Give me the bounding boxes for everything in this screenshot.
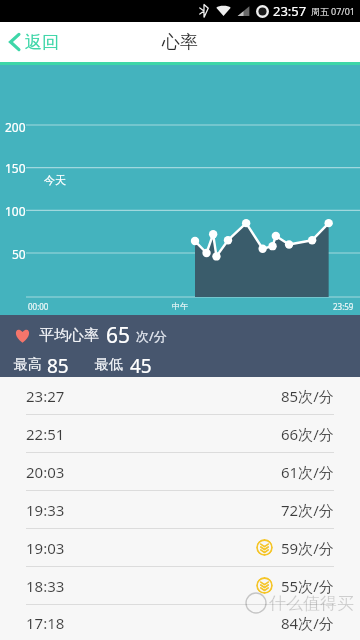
- staticText: 19:03: [26, 538, 65, 558]
- staticText: 23:59: [333, 301, 354, 312]
- staticText: 00:00: [28, 301, 49, 312]
- staticText: 心率: [162, 31, 198, 54]
- staticText: 85: [47, 353, 69, 377]
- button[interactable]: 22:51: [0, 415, 360, 452]
- staticText: 17:18: [26, 613, 65, 633]
- staticText: 最高: [14, 356, 42, 374]
- staticText: 23:27: [26, 386, 65, 406]
- button[interactable]: 18:33: [0, 567, 360, 604]
- staticText: 50: [12, 246, 26, 262]
- staticText: 23:57: [273, 2, 307, 20]
- staticText: 什么值得买: [269, 593, 354, 614]
- staticText: 今天: [44, 173, 66, 187]
- staticText: 100: [5, 203, 26, 219]
- staticText: 55次/分: [281, 576, 334, 596]
- staticText: 返回: [25, 32, 59, 53]
- staticText: 84次/分: [281, 613, 334, 633]
- staticText: 中午: [172, 301, 188, 311]
- button[interactable]: 20:03: [0, 453, 360, 490]
- staticText: 66次/分: [281, 424, 334, 444]
- staticText: 周五: [311, 6, 329, 17]
- button[interactable]: 23:27: [0, 377, 360, 414]
- staticText: 150: [5, 160, 26, 176]
- staticText: 200: [5, 119, 26, 135]
- staticText: 72次/分: [281, 500, 334, 520]
- staticText: 最低: [95, 356, 123, 374]
- staticText: 85次/分: [281, 386, 334, 406]
- button[interactable]: 返回: [0, 22, 69, 62]
- staticText: 45: [130, 353, 152, 377]
- other: 低心率标记: [256, 577, 273, 594]
- staticText: 59次/分: [281, 538, 334, 558]
- other: 低心率标记: [256, 539, 273, 556]
- staticText: 平均心率: [39, 326, 99, 345]
- staticText: 19:33: [26, 500, 65, 520]
- staticText: 61次/分: [281, 462, 334, 482]
- staticText: 22:51: [26, 424, 65, 444]
- button[interactable]: 19:03: [0, 529, 360, 566]
- button[interactable]: 17:18: [0, 605, 360, 640]
- staticText: 20:03: [26, 462, 65, 482]
- staticText: 18:33: [26, 576, 65, 596]
- button[interactable]: 19:33: [0, 491, 360, 528]
- staticText: 07/01: [331, 5, 355, 17]
- staticText: 次/分: [136, 327, 167, 345]
- staticText: 65: [106, 321, 131, 350]
